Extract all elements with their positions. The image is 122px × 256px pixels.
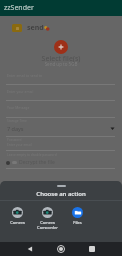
staticText: Files	[73, 220, 82, 225]
staticText: 7 days	[7, 125, 24, 132]
button[interactable]: Decrypt the file	[6, 159, 122, 166]
button[interactable]: Recents	[84, 242, 100, 256]
button[interactable]: Camera Camcorder	[32, 207, 62, 230]
button[interactable]: Files	[62, 207, 92, 225]
staticText: send	[27, 23, 44, 33]
staticText: Camera Camcorder	[37, 220, 58, 230]
staticText: Choose an action	[0, 190, 122, 198]
button[interactable]: Back	[22, 242, 38, 256]
button[interactable]: Home	[53, 242, 69, 256]
staticText: Select file(s)	[0, 54, 122, 64]
staticText: zzSender	[4, 3, 34, 13]
staticText: Camera	[10, 220, 25, 225]
staticText: Send up to 5GB	[0, 61, 122, 67]
staticText: Decrypt the file	[19, 159, 55, 166]
button[interactable]: Add files	[54, 40, 68, 54]
button[interactable]: Camera	[3, 207, 32, 225]
